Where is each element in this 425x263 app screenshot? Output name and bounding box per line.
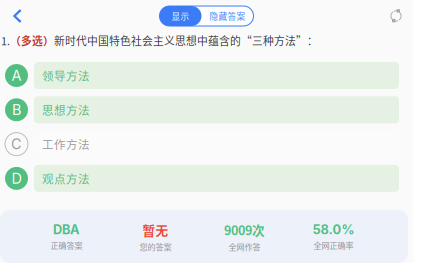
staticText: B (12, 101, 21, 118)
button[interactable]: D (5, 165, 399, 192)
button[interactable]: Back (0, 2, 34, 30)
staticText: C (11, 135, 22, 153)
staticText: 全网正确率 (313, 239, 353, 251)
staticText: 1. (1, 33, 10, 48)
staticText: 领导方法 (42, 67, 90, 84)
staticText: DBA (53, 222, 80, 237)
button[interactable]: B (5, 96, 399, 123)
staticText: 思想方法 (42, 101, 90, 118)
staticText: A (11, 67, 21, 84)
button[interactable]: 隐藏答案 (201, 6, 253, 26)
staticText: 58.0% (312, 222, 354, 237)
staticText: 新时代中国特色社会主义思想中蕴含的“三种方法”： (54, 33, 318, 48)
staticText: 观点方法 (42, 170, 90, 187)
staticText: （多选） (10, 33, 54, 48)
button[interactable]: Refresh (379, 2, 413, 30)
staticText: 工作方法 (42, 136, 90, 152)
button[interactable]: C (5, 131, 399, 158)
staticText: 全网作答 (228, 241, 260, 252)
staticText: 您的答案 (139, 241, 171, 252)
staticText: 显示 (171, 10, 189, 22)
staticText: D (11, 170, 21, 187)
button[interactable]: A (5, 62, 399, 89)
staticText: 正确答案 (50, 239, 82, 251)
button[interactable]: 显示 (159, 6, 201, 26)
staticText: 隐藏答案 (209, 10, 245, 22)
staticText: 9009次 (224, 220, 265, 239)
staticText: 暂无 (142, 220, 168, 239)
